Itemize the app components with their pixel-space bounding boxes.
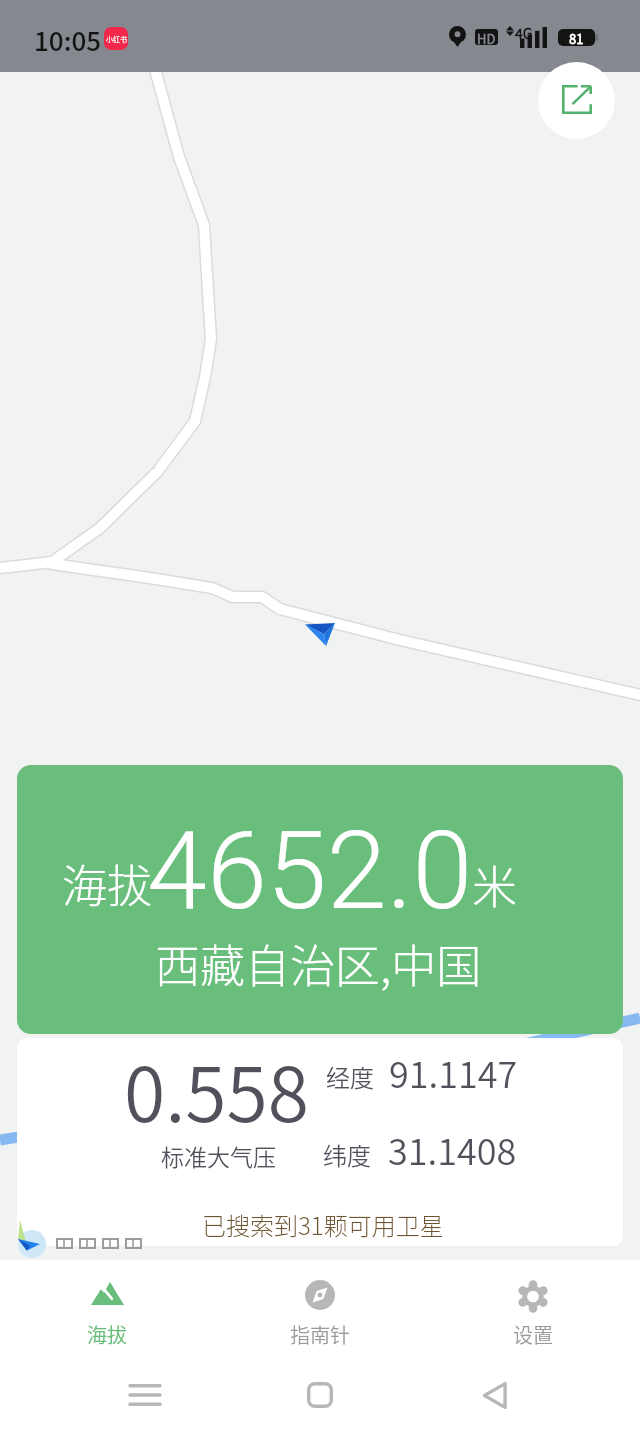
button[interactable]: Recent apps	[115, 1365, 175, 1425]
staticText: 0.558	[124, 1038, 309, 1144]
staticText: HD	[477, 29, 496, 45]
button[interactable]: Open map in app	[538, 62, 615, 139]
button[interactable]: Back	[465, 1365, 525, 1425]
staticText: 4G	[515, 23, 533, 43]
staticText: 经度	[326, 1059, 374, 1094]
staticText: 标准大气压	[161, 1139, 276, 1172]
staticText: 海拔	[87, 1320, 127, 1349]
staticText: 10:05	[34, 21, 102, 59]
button[interactable]: Home	[290, 1365, 350, 1425]
button[interactable]: 设置	[430, 1260, 630, 1360]
staticText: 西藏自治区,中国	[155, 931, 482, 996]
staticText: 91.1147	[389, 1046, 518, 1098]
staticText: 米	[472, 852, 518, 917]
staticText: 31.1408	[388, 1123, 517, 1175]
staticText: 已搜索到31颗可用卫星	[202, 1207, 444, 1242]
staticText: 小红书	[106, 34, 127, 44]
staticText: 海拔	[62, 851, 153, 916]
staticText: 设置	[513, 1320, 553, 1349]
button[interactable]: 指南针	[220, 1260, 420, 1360]
button[interactable]: 海拔	[10, 1260, 210, 1360]
staticText: 81	[569, 29, 584, 46]
button[interactable]: 海拔	[17, 765, 623, 1034]
staticText: 4652.0	[147, 808, 473, 935]
staticText: 纬度	[323, 1137, 371, 1172]
staticText: 指南针	[290, 1320, 350, 1349]
